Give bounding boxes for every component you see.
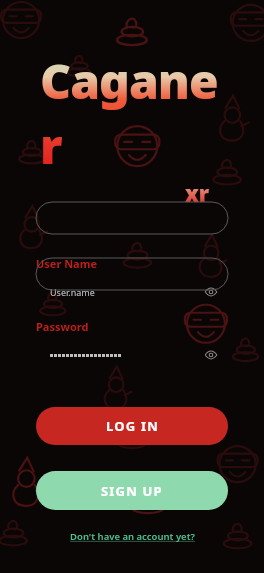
button[interactable]: LOG IN — [36, 407, 228, 445]
button[interactable]: Show text — [36, 339, 228, 371]
button[interactable]: Don't have an account yet? — [64, 527, 201, 546]
staticText: Don't have an account yet? — [70, 530, 195, 543]
staticText: Caganer — [40, 48, 228, 178]
button[interactable]: Show text — [204, 285, 218, 299]
staticText: User Name — [36, 256, 98, 271]
button[interactable]: Show text — [204, 348, 218, 362]
staticText: LOG IN — [106, 417, 159, 435]
staticText: User.name — [50, 286, 95, 298]
button[interactable]: User.name — [36, 276, 228, 308]
button[interactable]: SIGN UP — [36, 471, 228, 510]
staticText: xr — [185, 178, 210, 208]
staticText: SIGN UP — [101, 482, 163, 500]
staticText: Password — [36, 319, 89, 334]
